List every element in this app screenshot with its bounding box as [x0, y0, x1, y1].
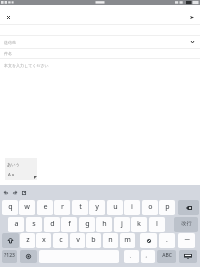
staticText: g — [85, 219, 90, 229]
staticText: c — [59, 235, 63, 245]
staticText: t — [79, 202, 82, 212]
button[interactable]: q — [2, 200, 18, 215]
button[interactable]: Close — [0, 9, 16, 25]
staticText: l — [156, 219, 158, 229]
button[interactable]: ー — [178, 233, 195, 248]
button[interactable]: 本文を入力してください — [0, 59, 200, 71]
button[interactable]: 件名 — [0, 49, 200, 58]
button[interactable]: 。 — [141, 250, 155, 263]
staticText: 。 — [145, 252, 151, 259]
staticText: f — [68, 219, 71, 229]
button[interactable]: c — [53, 233, 68, 248]
staticText: あいう — [7, 162, 20, 167]
button[interactable]: f — [61, 217, 77, 232]
button[interactable]: ?123 — [2, 250, 17, 263]
button[interactable]: z — [20, 233, 35, 248]
button[interactable]: ABC — [157, 250, 176, 263]
staticText: ー — [184, 236, 190, 244]
staticText: y — [95, 202, 99, 212]
staticText: A a — [8, 172, 15, 178]
staticText: b — [91, 235, 96, 245]
button[interactable] — [20, 250, 37, 263]
staticText: 、 — [129, 252, 135, 259]
button[interactable]: 送信先 — [0, 36, 200, 48]
button[interactable]: n — [103, 233, 118, 248]
staticText: 本文を入力してください — [4, 63, 49, 68]
button[interactable]: e — [37, 200, 53, 215]
staticText: 件名 — [4, 51, 12, 56]
button[interactable]: Redo — [11, 189, 18, 196]
button[interactable]: x — [36, 233, 51, 248]
staticText: o — [148, 202, 153, 212]
button[interactable]: t — [72, 200, 88, 215]
button[interactable]: v — [70, 233, 85, 248]
button[interactable] — [2, 233, 19, 248]
button[interactable]: p — [159, 200, 175, 215]
button[interactable]: l — [149, 217, 165, 232]
staticText: . — [166, 235, 168, 244]
staticText: w — [24, 202, 30, 212]
button[interactable]: j — [114, 217, 130, 232]
staticText: v — [76, 235, 80, 245]
button[interactable]: s — [26, 217, 42, 232]
button[interactable]: . — [159, 233, 175, 248]
staticText: n — [108, 235, 113, 245]
button[interactable]: r — [54, 200, 70, 215]
button[interactable]: Clipboard — [20, 189, 27, 196]
staticText: 送信先 — [4, 40, 16, 45]
button[interactable]: 改行 — [174, 217, 198, 232]
button[interactable] — [179, 250, 197, 263]
staticText: j — [121, 219, 123, 229]
button[interactable]: b — [86, 233, 101, 248]
staticText: ABC — [162, 252, 172, 259]
button[interactable]: u — [107, 200, 123, 215]
staticText: u — [113, 202, 118, 212]
button[interactable]: w — [19, 200, 35, 215]
staticText: r — [61, 202, 64, 212]
button[interactable]: d — [44, 217, 60, 232]
staticText: ?123 — [4, 252, 15, 259]
button[interactable]: 、 — [124, 250, 139, 263]
staticText: 改行 — [181, 220, 192, 227]
staticText: a — [14, 219, 19, 229]
button[interactable]: Send — [184, 9, 200, 25]
button[interactable]: Undo — [2, 189, 9, 196]
button[interactable]: i — [124, 200, 140, 215]
button[interactable]: あいう — [5, 158, 37, 180]
staticText: h — [102, 219, 107, 229]
button[interactable]: y — [89, 200, 105, 215]
button[interactable]: g — [79, 217, 95, 232]
button[interactable]: k — [131, 217, 147, 232]
staticText: s — [32, 219, 36, 229]
staticText: x — [42, 235, 46, 245]
staticText: k — [137, 219, 141, 229]
staticText: z — [26, 235, 30, 245]
staticText: q — [8, 202, 13, 212]
button[interactable]: m — [120, 233, 135, 248]
button[interactable]: h — [96, 217, 112, 232]
button[interactable]: a — [8, 217, 24, 232]
staticText: i — [131, 202, 133, 212]
staticText: p — [165, 202, 170, 212]
button[interactable]: o — [142, 200, 158, 215]
staticText: e — [43, 202, 48, 212]
staticText: m — [124, 235, 131, 245]
button[interactable] — [140, 233, 157, 248]
staticText: d — [50, 219, 55, 229]
button[interactable] — [178, 200, 199, 215]
